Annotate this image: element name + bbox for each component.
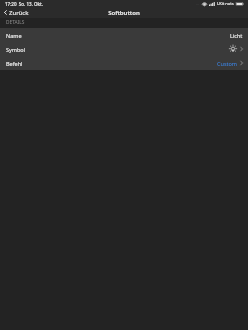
button[interactable]: Symbol: [0, 42, 248, 56]
staticText: Custom: [217, 60, 237, 67]
staticText: LKit nuts: [217, 1, 234, 6]
other: Symbol auswählen: [229, 45, 237, 53]
staticText: Befehl: [6, 60, 23, 67]
staticText: DETAILS: [6, 19, 25, 26]
staticText: Licht: [230, 32, 243, 39]
button[interactable]: Name: [0, 28, 248, 42]
button[interactable]: Befehl: [0, 56, 248, 70]
staticText: Symbol: [6, 46, 26, 53]
staticText: 17:20 So. 13. Okt.: [5, 1, 44, 7]
staticText: Zurück: [9, 9, 29, 16]
staticText: Softbutton: [108, 9, 140, 17]
button[interactable]: Zurück: [0, 7, 35, 18]
staticText: Name: [6, 32, 22, 39]
